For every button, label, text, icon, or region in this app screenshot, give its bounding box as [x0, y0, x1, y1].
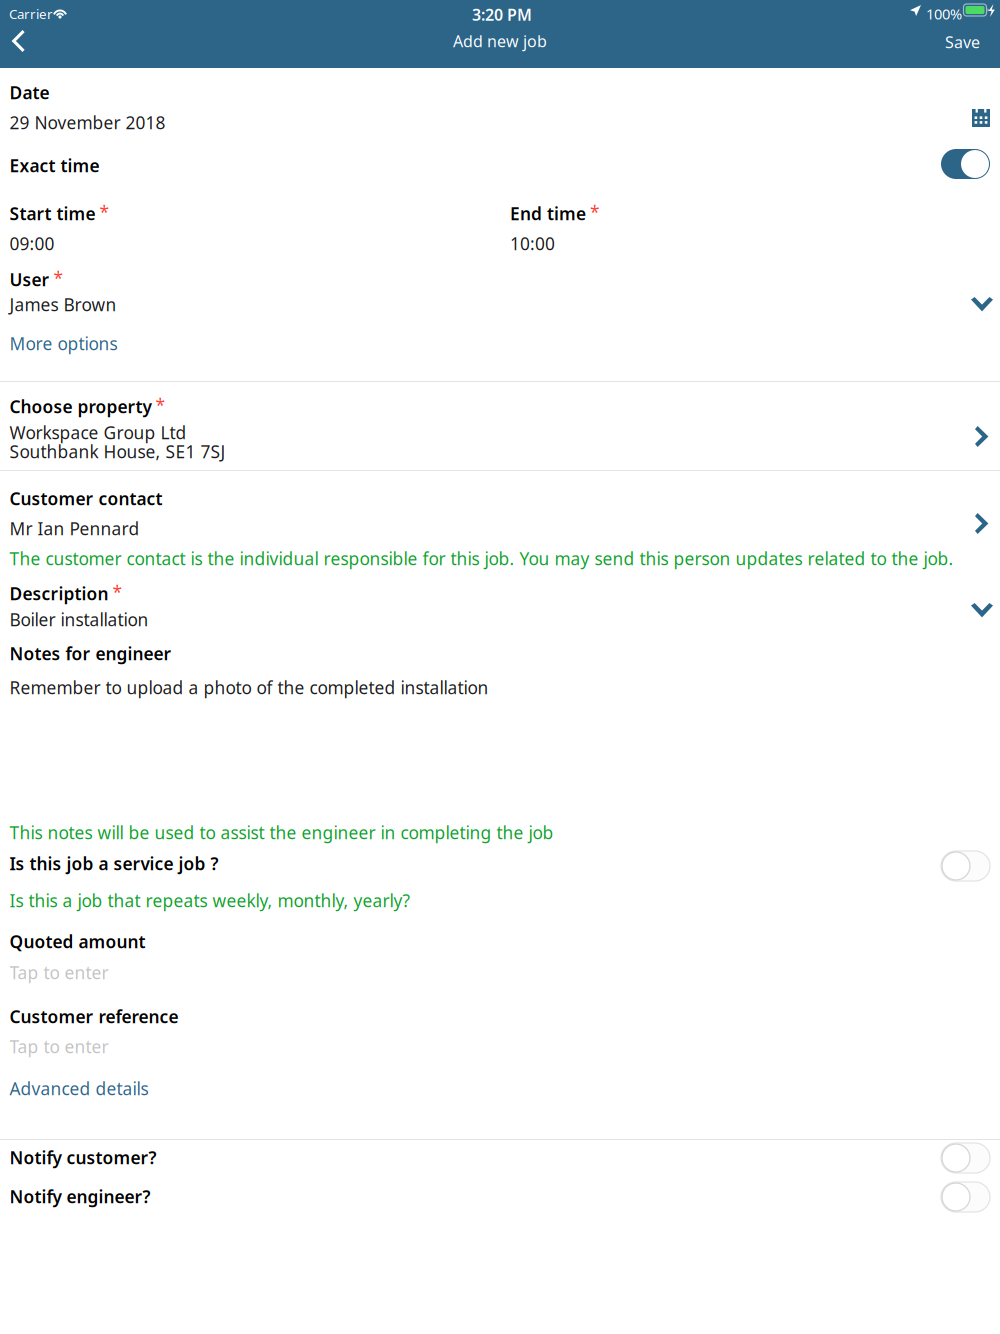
- button[interactable]: Notify customer: [941, 1143, 990, 1173]
- button[interactable]: Choose customer contact: [975, 513, 989, 534]
- staticText: Quoted amount: [9, 930, 145, 953]
- staticText: Southbank House, SE1 7SJ: [9, 440, 225, 463]
- staticText: Workspace Group Ltd: [9, 421, 186, 444]
- staticText: 100%: [926, 4, 962, 23]
- staticText: Tap to enter: [9, 961, 108, 984]
- button[interactable]: Save: [904, 22, 980, 62]
- button[interactable]: Back: [0, 21, 40, 61]
- staticText: Mr Ian Pennard: [9, 517, 139, 540]
- button[interactable]: More options: [9, 332, 117, 355]
- staticText: Is this job a service job ?: [9, 852, 218, 875]
- staticText: Notify customer?: [9, 1146, 156, 1169]
- staticText: Add new job: [453, 30, 547, 52]
- staticText: Remember to upload a photo of the comple…: [9, 676, 488, 699]
- staticText: Choose property: [9, 395, 151, 418]
- staticText: Save: [945, 31, 980, 53]
- staticText: Advanced details: [9, 1077, 148, 1100]
- staticText: 29 November 2018: [9, 111, 165, 134]
- staticText: User: [9, 268, 49, 291]
- staticText: 10:00: [510, 232, 555, 255]
- button[interactable]: Is this job a service job: [941, 851, 990, 881]
- staticText: *: [99, 200, 109, 223]
- staticText: This notes will be used to assist the en…: [9, 821, 553, 844]
- staticText: Customer contact: [9, 487, 162, 510]
- staticText: James Brown: [9, 293, 116, 316]
- button[interactable]: Exact time: [941, 149, 990, 179]
- staticText: The customer contact is the individual r…: [9, 547, 953, 570]
- staticText: *: [53, 266, 63, 289]
- button[interactable]: Choose property: [975, 426, 989, 447]
- staticText: Boiler installation: [9, 608, 148, 631]
- staticText: *: [590, 200, 600, 223]
- staticText: *: [112, 580, 122, 603]
- staticText: Carrier: [9, 5, 53, 23]
- button[interactable]: Choose date: [972, 109, 990, 127]
- staticText: Customer reference: [9, 1005, 178, 1028]
- staticText: Date: [9, 81, 49, 104]
- staticText: Tap to enter: [9, 1035, 108, 1058]
- staticText: Exact time: [9, 154, 99, 177]
- staticText: Notes for engineer: [9, 642, 171, 665]
- staticText: More options: [9, 332, 117, 355]
- staticText: Notify engineer?: [9, 1185, 150, 1208]
- staticText: 3:20 PM: [472, 4, 532, 25]
- staticText: Start time: [9, 202, 95, 225]
- button[interactable]: Choose description: [971, 603, 993, 618]
- staticText: Description: [9, 582, 108, 605]
- staticText: *: [155, 393, 165, 416]
- staticText: 09:00: [9, 232, 54, 255]
- button[interactable]: Advanced details: [9, 1077, 148, 1100]
- staticText: End time: [510, 202, 586, 225]
- button[interactable]: Notify engineer: [941, 1182, 990, 1212]
- staticText: Is this a job that repeats weekly, month…: [9, 889, 410, 912]
- button[interactable]: Choose user: [971, 297, 993, 312]
